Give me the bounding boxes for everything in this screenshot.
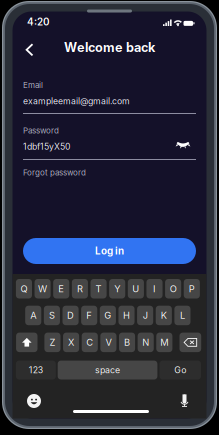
- button[interactable]: Delete: [179, 333, 201, 352]
- staticText: V: [105, 337, 111, 348]
- staticText: 1dbf15yX50: [23, 141, 70, 152]
- button[interactable]: E: [53, 279, 69, 298]
- staticText: I: [153, 283, 156, 294]
- button[interactable]: G: [100, 306, 116, 325]
- button[interactable]: U: [128, 279, 144, 298]
- staticText: K: [161, 310, 167, 321]
- button[interactable]: H: [118, 306, 135, 325]
- staticText: A: [30, 310, 36, 321]
- staticText: M: [160, 337, 168, 348]
- staticText: Q: [20, 283, 27, 294]
- staticText: P: [189, 283, 195, 294]
- staticText: C: [86, 337, 93, 348]
- button[interactable]: L: [174, 306, 190, 325]
- button[interactable]: A: [25, 306, 41, 325]
- button[interactable]: Go: [159, 361, 201, 379]
- staticText: J: [143, 310, 148, 321]
- button[interactable]: Emoji: [27, 394, 41, 408]
- button[interactable]: S: [44, 306, 60, 325]
- button[interactable]: W: [35, 279, 51, 298]
- button[interactable]: P: [184, 279, 200, 298]
- button[interactable]: N: [138, 333, 154, 352]
- button[interactable]: Q: [16, 279, 32, 298]
- button[interactable]: J: [137, 306, 153, 325]
- button[interactable]: Back: [21, 41, 39, 59]
- staticText: exampleemail@gmail.com: [23, 96, 130, 106]
- button[interactable]: Shift: [16, 333, 37, 352]
- staticText: B: [124, 337, 130, 348]
- button[interactable]: Z: [44, 333, 60, 352]
- button[interactable]: V: [100, 333, 116, 352]
- staticText: U: [132, 283, 139, 294]
- staticText: X: [68, 337, 74, 348]
- button[interactable]: C: [82, 333, 98, 352]
- staticText: R: [77, 283, 83, 294]
- button[interactable]: D: [62, 306, 79, 325]
- staticText: H: [123, 310, 130, 321]
- staticText: N: [142, 337, 149, 348]
- button[interactable]: 123: [16, 361, 56, 379]
- staticText: Log in: [95, 245, 124, 257]
- staticText: Go: [174, 365, 186, 375]
- staticText: Password: [23, 126, 59, 135]
- staticText: W: [38, 283, 47, 294]
- staticText: Welcome back: [64, 40, 155, 55]
- staticText: S: [49, 310, 55, 321]
- button[interactable]: K: [156, 306, 172, 325]
- button[interactable]: X: [63, 333, 79, 352]
- button[interactable]: Y: [109, 279, 125, 298]
- staticText: F: [86, 310, 92, 321]
- staticText: space: [95, 365, 120, 375]
- staticText: 123: [29, 365, 43, 375]
- staticText: T: [96, 283, 102, 294]
- staticText: Y: [114, 283, 120, 294]
- button[interactable]: O: [165, 279, 181, 298]
- staticText: L: [180, 310, 185, 321]
- staticText: Email: [23, 80, 43, 90]
- staticText: G: [104, 310, 111, 321]
- staticText: D: [67, 310, 74, 321]
- button[interactable]: Forgot password: [23, 167, 143, 178]
- staticText: Z: [49, 337, 55, 348]
- button[interactable]: Dictate: [178, 393, 191, 409]
- button[interactable]: space: [58, 361, 157, 379]
- button[interactable]: I: [146, 279, 163, 298]
- button[interactable]: B: [119, 333, 135, 352]
- button[interactable]: Log in: [23, 238, 196, 264]
- button[interactable]: M: [156, 333, 172, 352]
- staticText: 4:20: [27, 16, 50, 28]
- button[interactable]: T: [90, 279, 107, 298]
- button[interactable]: R: [72, 279, 88, 298]
- button[interactable]: F: [81, 306, 97, 325]
- staticText: O: [170, 283, 177, 294]
- staticText: E: [58, 283, 64, 294]
- staticText: Forgot password: [23, 168, 86, 177]
- button[interactable]: Show password: [175, 140, 191, 152]
